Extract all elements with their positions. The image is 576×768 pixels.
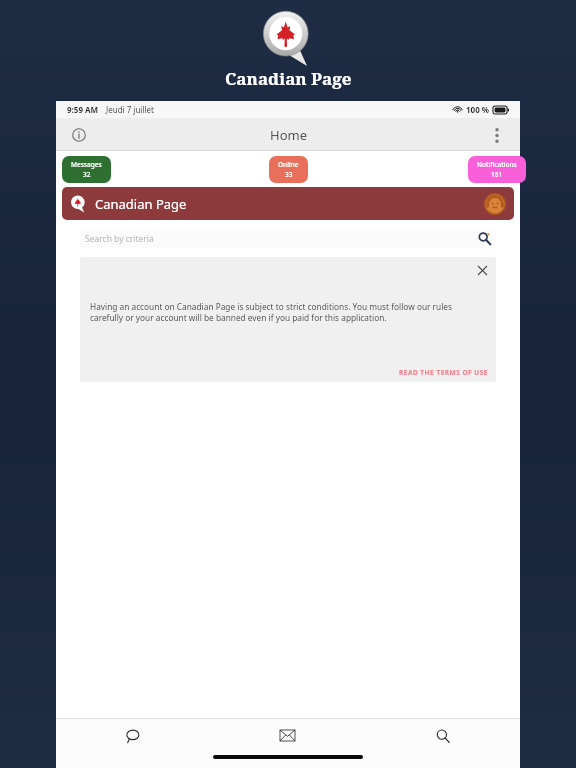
button[interactable]: Search by criteria	[80, 229, 496, 248]
staticText: Online	[278, 160, 299, 169]
staticText: 9:59 AM	[67, 104, 99, 115]
staticText: Canadian Page	[95, 195, 187, 213]
button[interactable]: Information	[64, 120, 94, 150]
button[interactable]: Support agent	[484, 193, 506, 215]
staticText: 33	[285, 170, 293, 179]
staticText: 32	[83, 170, 91, 179]
staticText: 100 %	[466, 104, 490, 115]
button[interactable]: Online	[269, 156, 308, 183]
button[interactable]: Canadian Page	[62, 187, 514, 220]
button[interactable]: Search	[365, 719, 520, 752]
button[interactable]: READ THE TERMS OF USE	[399, 368, 488, 377]
button[interactable]: Notifications	[468, 156, 526, 183]
staticText: Messages	[71, 160, 102, 169]
staticText: Having an account on Canadian Page is su…	[90, 301, 486, 323]
button[interactable]: Messages	[210, 719, 365, 752]
button[interactable]: More options	[483, 121, 511, 149]
staticText: 181	[491, 170, 503, 179]
staticText: Search by criteria	[85, 233, 154, 245]
button[interactable]: Messages	[62, 156, 111, 183]
staticText: Canadian Page	[225, 67, 352, 90]
staticText: Jeudi 7 juillet	[106, 104, 154, 115]
button[interactable]: Chat	[56, 719, 210, 752]
staticText: READ THE TERMS OF USE	[399, 368, 488, 377]
staticText: Notifications	[477, 160, 517, 169]
staticText: Home	[270, 126, 307, 144]
button[interactable]: Close	[474, 262, 490, 278]
